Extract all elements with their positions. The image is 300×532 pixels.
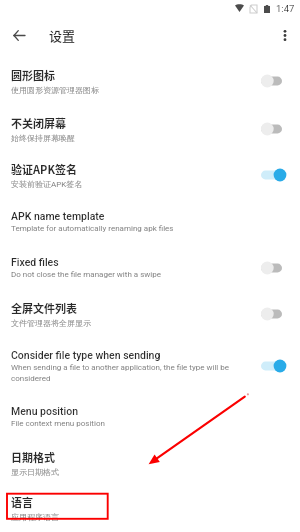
button[interactable]: Toggle <box>261 261 287 275</box>
staticText: 设置 <box>49 26 76 45</box>
button[interactable]: 不关闭屏幕 <box>0 105 300 152</box>
staticText: 文件管理器将全屏显示 <box>11 318 91 328</box>
button[interactable]: More options <box>273 23 297 47</box>
button[interactable]: Fixed files <box>0 245 300 290</box>
staticText: Template for automatically renaming apk … <box>11 224 174 233</box>
staticText: 圆形图标 <box>11 67 55 83</box>
button[interactable]: Toggle <box>261 359 287 373</box>
button[interactable]: Toggle <box>261 168 287 182</box>
button[interactable]: 日期格式 <box>0 440 300 485</box>
staticText: File context menu position <box>11 419 105 428</box>
staticText: When sending a file to another applicati… <box>11 363 255 383</box>
staticText: Do not close the file manager with a swi… <box>11 270 161 279</box>
staticText: 验证APK签名 <box>11 161 77 177</box>
staticText: Consider file type when sending <box>11 349 161 361</box>
button[interactable]: Menu position <box>0 393 300 440</box>
staticText: 不关闭屏幕 <box>11 115 66 131</box>
button[interactable]: 语言 <box>0 485 300 531</box>
staticText: 1:47 <box>276 3 295 14</box>
staticText: 始终保持屏幕唤醒 <box>11 133 75 143</box>
staticText: 安装前验证APK签名 <box>11 179 83 189</box>
staticText: Fixed files <box>11 256 59 268</box>
button[interactable]: Back <box>7 23 31 47</box>
button[interactable]: APK name template <box>0 198 300 245</box>
staticText: Menu position <box>11 405 79 417</box>
staticText: 应用程序语言 <box>11 512 59 522</box>
button[interactable]: Toggle <box>261 74 287 88</box>
staticText: 日期格式 <box>11 449 55 465</box>
button[interactable]: Toggle <box>261 122 287 136</box>
staticText: 全屏文件列表 <box>11 300 77 316</box>
button[interactable]: 验证APK签名 <box>0 152 300 198</box>
button[interactable]: 圆形图标 <box>0 57 300 105</box>
button[interactable]: Toggle <box>261 307 287 321</box>
button[interactable]: Consider file type when sending <box>0 338 300 393</box>
staticText: 使用圆形资源管理器图标 <box>11 85 99 95</box>
staticText: 显示日期格式 <box>11 467 59 477</box>
staticText: 语言 <box>11 494 33 510</box>
staticText: APK name template <box>11 210 105 222</box>
button[interactable]: 全屏文件列表 <box>0 290 300 338</box>
